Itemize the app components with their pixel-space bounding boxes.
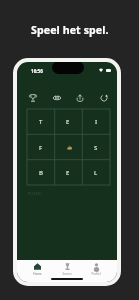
button[interactable]: Hint	[50, 91, 64, 105]
button[interactable]: S	[82, 135, 110, 160]
button[interactable]: Share	[73, 91, 87, 105]
button[interactable]: Home	[30, 263, 45, 276]
staticText: F	[39, 144, 43, 152]
button[interactable]: Scores	[59, 263, 75, 276]
staticText: I	[95, 118, 98, 126]
staticText: 16:56	[31, 68, 43, 74]
staticText: B	[39, 169, 43, 177]
button[interactable]: T	[27, 109, 54, 135]
button[interactable]: Profiel	[88, 263, 104, 276]
button[interactable]: E	[54, 160, 82, 185]
button[interactable]: B	[27, 160, 54, 185]
button[interactable]: Restart	[97, 91, 111, 105]
button[interactable]: F	[27, 135, 54, 160]
staticText: E	[66, 169, 70, 177]
staticText: E	[66, 118, 70, 126]
staticText: Profiel	[91, 272, 101, 276]
button[interactable]: L	[82, 160, 110, 185]
staticText: Home	[33, 272, 42, 276]
staticText: PUZZEL	[28, 191, 43, 196]
staticText: Speel het spel.	[31, 23, 109, 37]
staticText: T	[39, 118, 43, 126]
button[interactable]	[54, 135, 82, 160]
button[interactable]: Scores	[26, 91, 40, 105]
button[interactable]: I	[82, 109, 110, 135]
staticText: L	[94, 169, 98, 177]
staticText: Scores	[62, 272, 72, 276]
button[interactable]: E	[54, 109, 82, 135]
staticText: S	[94, 144, 98, 152]
